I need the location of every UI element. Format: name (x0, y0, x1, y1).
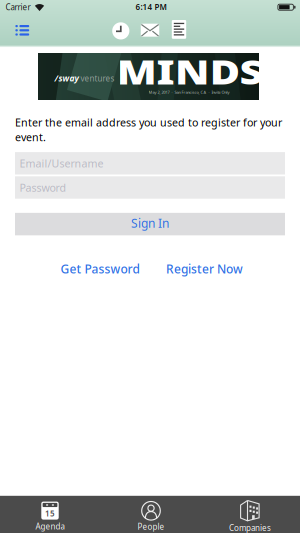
button[interactable]: Menu (15, 25, 30, 36)
staticText: 6:14 PM (135, 1, 166, 12)
staticText: 15 (45, 508, 55, 519)
staticText: People (137, 521, 164, 532)
staticText: Password (19, 180, 66, 195)
staticText: Enter the email address you used to regi… (15, 115, 282, 129)
button[interactable]: People (100, 496, 200, 533)
staticText: Register Now (166, 261, 243, 277)
button[interactable]: Sign In (15, 213, 285, 235)
button[interactable]: Mail (141, 24, 159, 37)
staticText: May 2, 2017 · San Francisco, CA · Invite… (148, 90, 229, 95)
staticText: /sway (54, 72, 78, 84)
staticText: MINDS (131, 49, 249, 94)
button[interactable]: Get Password (60, 261, 139, 277)
button[interactable]: Companies (200, 496, 300, 533)
staticText: Email/Username (19, 156, 103, 170)
button[interactable]: Notes (172, 20, 186, 39)
staticText: Sign In (131, 215, 169, 231)
button[interactable]: Register Now (166, 261, 243, 277)
staticText: event. (15, 130, 46, 144)
staticText: Carrier (5, 2, 30, 12)
button[interactable]: Email/Username (15, 152, 285, 174)
button[interactable]: Recent (112, 22, 129, 39)
button[interactable]: 15 (0, 496, 100, 533)
staticText: Companies (229, 523, 271, 533)
staticText: Agenda (35, 521, 64, 532)
staticText: ventures (80, 73, 114, 84)
button[interactable]: Password (15, 176, 285, 199)
staticText: Get Password (60, 261, 139, 277)
